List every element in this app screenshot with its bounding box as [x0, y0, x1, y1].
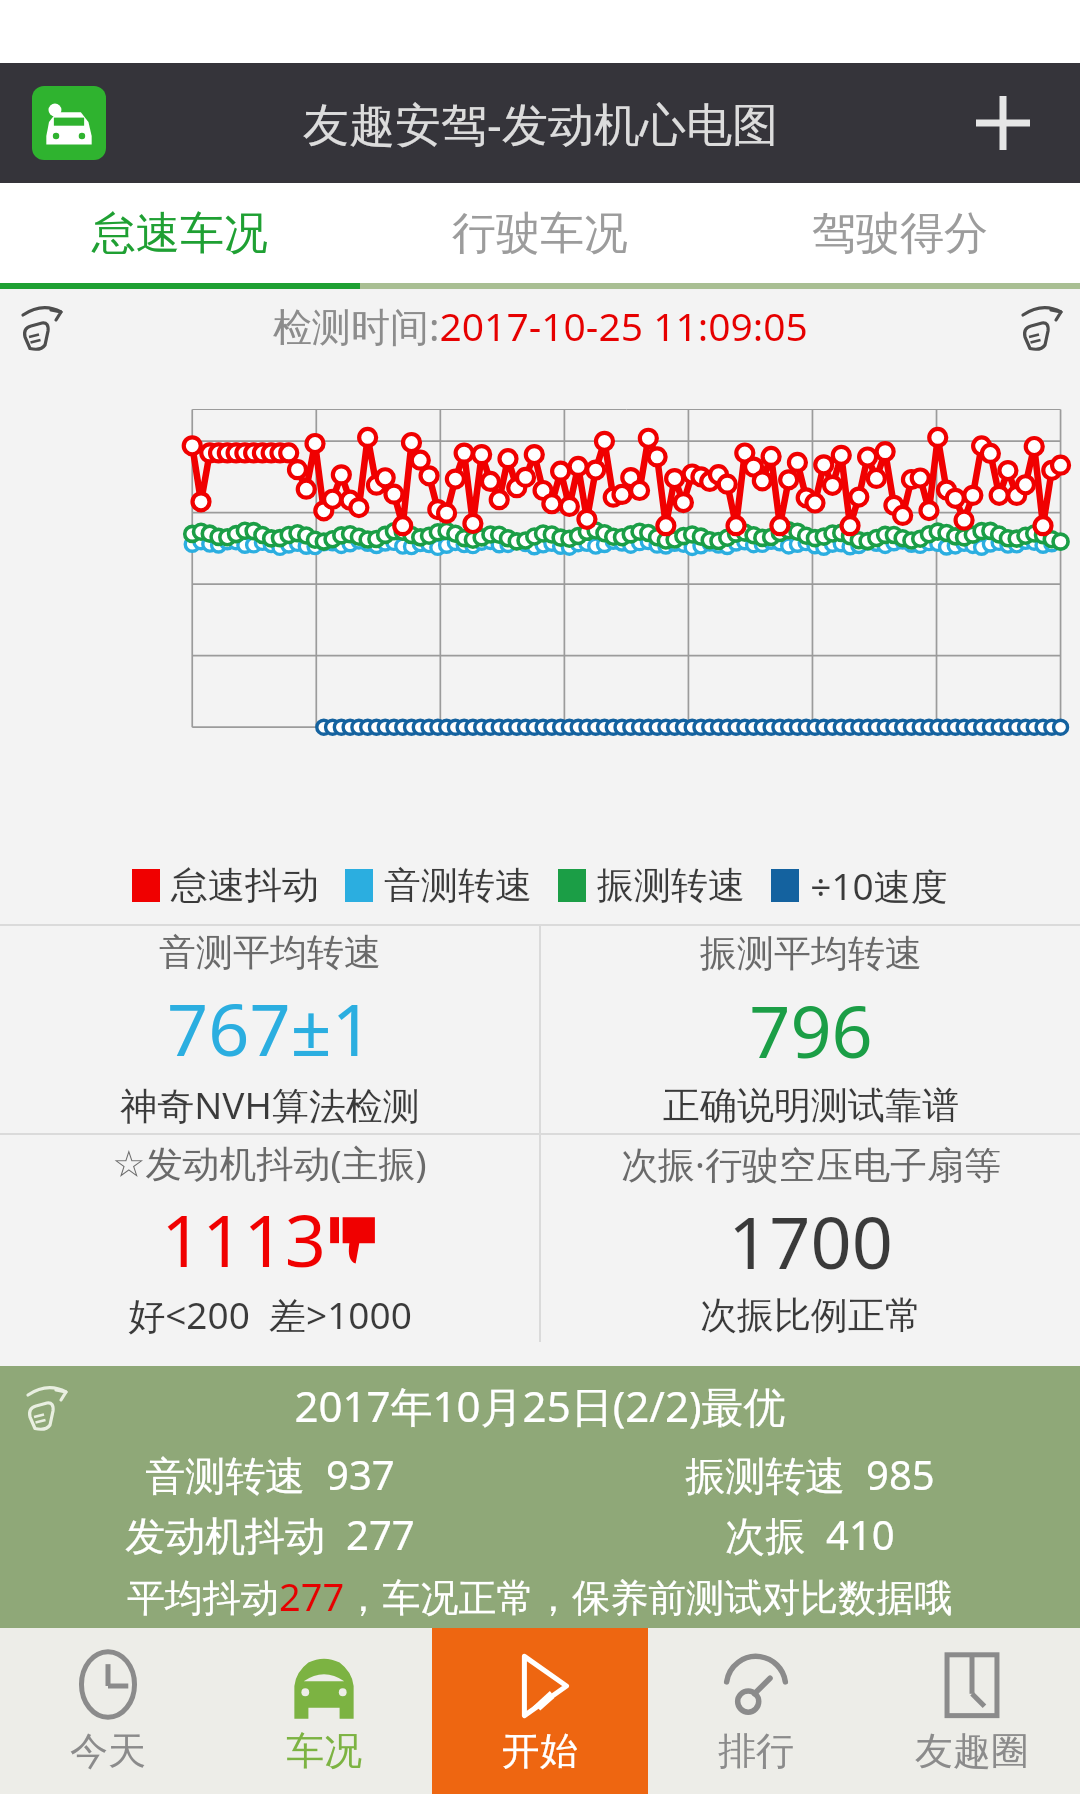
staticText: 排行: [718, 1727, 794, 1775]
staticText: 次振比例正常: [700, 1292, 922, 1339]
staticText: 767±1: [167, 979, 373, 1077]
staticText: 友趣圈: [915, 1727, 1029, 1775]
staticText: 行驶车况: [452, 206, 628, 261]
staticText: 今天: [70, 1727, 146, 1775]
staticText: ÷10速度: [810, 860, 948, 911]
button[interactable]: 次振·行驶空压电子扇等: [541, 1135, 1080, 1342]
other: Previous: [15, 300, 65, 350]
staticText: 1113: [161, 1190, 326, 1288]
staticText: 神奇NVH算法检测: [120, 1079, 420, 1130]
button[interactable]: 车况: [216, 1628, 432, 1794]
staticText: 正确说明测试靠谱: [663, 1082, 959, 1129]
staticText: 2017年10月25日(2/2)最优: [294, 1377, 786, 1434]
button[interactable]: 驾驶得分: [720, 183, 1080, 283]
staticText: 振测转速: [597, 862, 745, 909]
staticText: 音测转速 937: [145, 1447, 395, 1502]
button[interactable]: 行驶车况: [360, 183, 720, 283]
staticText: 友趣安驾-发动机心电图: [303, 92, 778, 155]
button[interactable]: ☆发动机抖动(主振): [0, 1135, 539, 1342]
staticText: 音测平均转速: [159, 929, 381, 976]
staticText: 平均抖动277，车况正常，保养前测试对比数据哦: [127, 1570, 953, 1622]
button[interactable]: App icon: [32, 86, 106, 160]
staticText: 796: [749, 981, 873, 1079]
button[interactable]: 友趣圈: [864, 1628, 1080, 1794]
staticText: 开始: [502, 1727, 578, 1775]
button[interactable]: 音测平均转速: [0, 926, 539, 1133]
button[interactable]: 振测平均转速: [541, 926, 1080, 1133]
button[interactable]: Add: [960, 80, 1046, 166]
button[interactable]: 排行: [648, 1628, 864, 1794]
staticText: 振测转速 985: [685, 1447, 935, 1502]
staticText: 车况: [286, 1727, 362, 1775]
staticText: 驾驶得分: [812, 206, 988, 261]
staticText: 音测转速: [384, 862, 532, 909]
button[interactable]: 开始: [432, 1628, 648, 1794]
staticText: 次振 410: [725, 1507, 895, 1562]
staticText: 怠速抖动: [171, 862, 319, 909]
button[interactable]: 今天: [0, 1628, 216, 1794]
staticText: 1700: [728, 1192, 893, 1290]
staticText: ☆发动机抖动(主振): [112, 1137, 427, 1188]
staticText: 好<200 差>1000: [128, 1289, 412, 1340]
button[interactable]: Swipe history: [0, 1366, 1080, 1628]
staticText: 检测时间:2017-10-25 11:09:05: [273, 299, 808, 352]
staticText: 发动机抖动 277: [125, 1507, 415, 1562]
staticText: 次振·行驶空压电子扇等: [621, 1138, 1001, 1189]
staticText: 怠速车况: [92, 206, 268, 261]
staticText: 振测平均转速: [700, 930, 922, 977]
other: Next: [1015, 300, 1065, 350]
other: Swipe history: [20, 1380, 70, 1430]
button[interactable]: 怠速车况: [0, 183, 360, 283]
